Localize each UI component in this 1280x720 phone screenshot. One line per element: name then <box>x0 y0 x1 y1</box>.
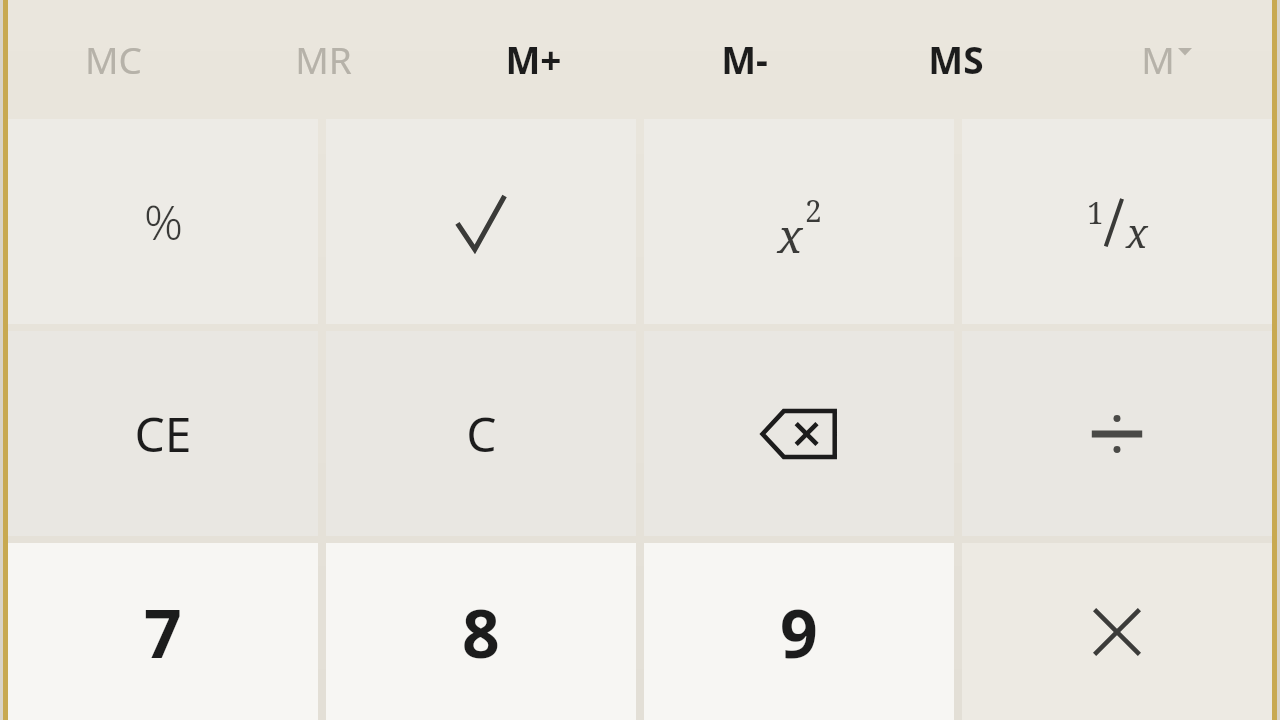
staticText: M+ <box>505 34 562 84</box>
staticText: % <box>144 189 183 254</box>
staticText: 8 <box>462 587 500 677</box>
staticText: MC <box>85 34 142 84</box>
button[interactable]: M <box>1061 0 1272 117</box>
button[interactable]: Percent <box>8 119 318 324</box>
button[interactable]: 8 <box>326 543 636 720</box>
button[interactable]: Backspace <box>644 331 954 536</box>
staticText: x <box>777 204 803 267</box>
staticText: M <box>1141 34 1175 84</box>
staticText: 1 <box>1087 192 1104 233</box>
staticText: 9 <box>780 587 818 677</box>
staticText: CE <box>134 401 192 466</box>
staticText: C <box>466 401 497 466</box>
button[interactable]: M- <box>639 0 850 117</box>
button[interactable]: 9 <box>644 543 954 720</box>
button[interactable]: C <box>326 331 636 536</box>
staticText: M- <box>721 34 768 84</box>
button[interactable]: Multiply <box>962 543 1272 720</box>
button[interactable]: MR <box>218 0 428 117</box>
staticText: 7 <box>144 587 182 677</box>
staticText: x <box>1126 205 1148 259</box>
staticText: 2 <box>805 190 822 231</box>
button[interactable]: One over x <box>962 119 1272 324</box>
button[interactable]: CE <box>8 331 318 536</box>
button[interactable]: X squared <box>644 119 954 324</box>
button[interactable]: MC <box>8 0 218 117</box>
button[interactable]: Square root <box>326 119 636 324</box>
staticText: MS <box>928 34 984 84</box>
button[interactable]: 7 <box>8 543 318 720</box>
button[interactable]: Divide <box>962 331 1272 536</box>
staticText: MR <box>295 34 352 84</box>
button[interactable]: M+ <box>428 0 639 117</box>
button[interactable]: MS <box>850 0 1061 117</box>
